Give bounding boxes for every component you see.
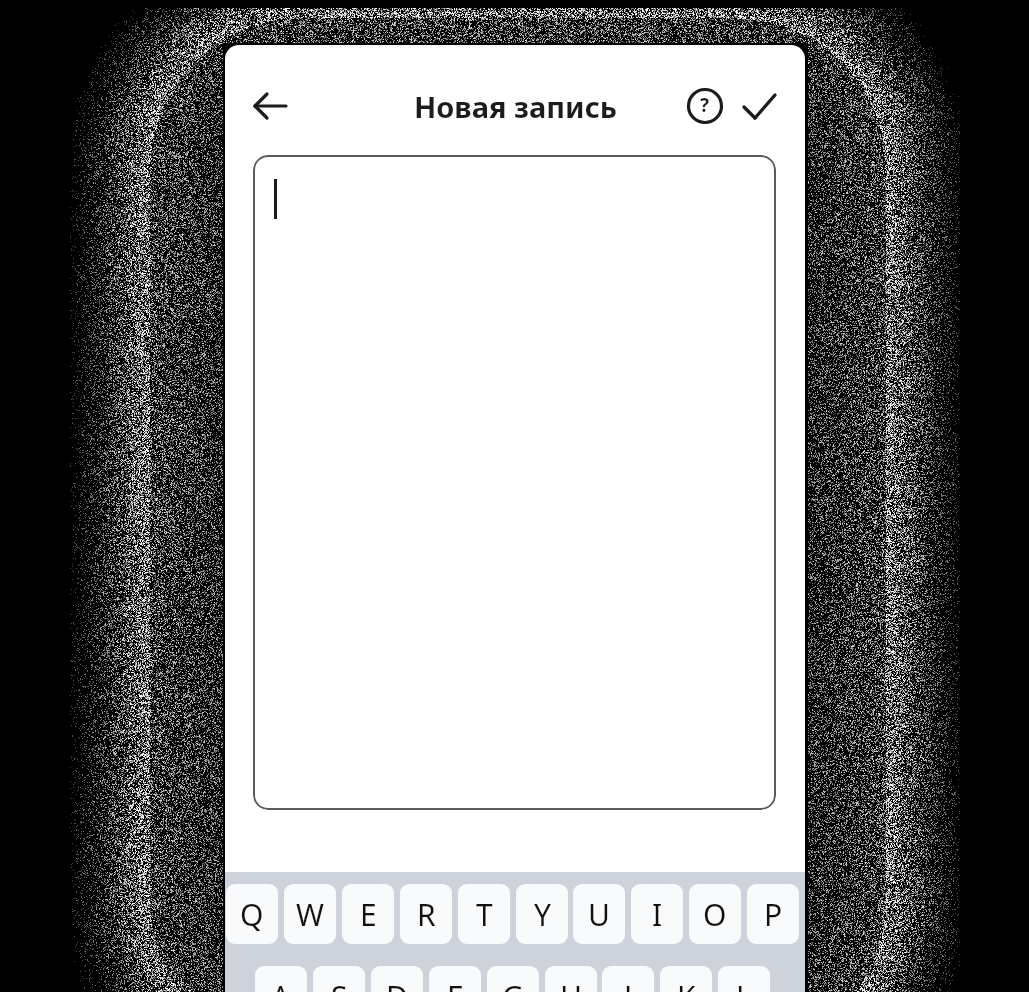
- button[interactable]: D: [371, 966, 423, 992]
- staticText: Y: [534, 894, 551, 935]
- button[interactable]: P: [747, 884, 799, 944]
- staticText: L: [736, 976, 752, 992]
- button[interactable]: G: [487, 966, 539, 992]
- staticText: E: [360, 894, 377, 935]
- button[interactable]: E: [342, 884, 394, 944]
- staticText: Новая запись: [414, 87, 617, 125]
- button[interactable]: Back: [248, 84, 292, 128]
- staticText: P: [764, 894, 783, 935]
- staticText: R: [417, 894, 436, 935]
- staticText: K: [677, 976, 696, 992]
- staticText: ?: [700, 92, 710, 118]
- staticText: D: [386, 976, 408, 992]
- button[interactable]: Y: [516, 884, 568, 944]
- staticText: I: [652, 894, 663, 935]
- staticText: S: [331, 976, 348, 992]
- button[interactable]: R: [400, 884, 452, 944]
- staticText: J: [624, 976, 633, 992]
- staticText: W: [296, 894, 324, 935]
- staticText: F: [447, 976, 463, 992]
- staticText: Q: [240, 894, 264, 935]
- staticText: A: [271, 976, 291, 992]
- button[interactable]: K: [660, 966, 712, 992]
- button[interactable]: I: [631, 884, 683, 944]
- button[interactable]: Help: [681, 82, 729, 130]
- button[interactable]: O: [689, 884, 741, 944]
- button[interactable]: W: [284, 884, 336, 944]
- button[interactable]: H: [545, 966, 597, 992]
- button[interactable]: A: [255, 966, 307, 992]
- button[interactable]: Save: [735, 82, 783, 130]
- button[interactable]: T: [458, 884, 510, 944]
- button[interactable]: [253, 155, 776, 810]
- staticText: O: [703, 894, 727, 935]
- staticText: H: [560, 976, 583, 992]
- staticText: T: [476, 894, 493, 935]
- button[interactable]: J: [602, 966, 654, 992]
- button[interactable]: S: [313, 966, 365, 992]
- button[interactable]: U: [573, 884, 625, 944]
- staticText: G: [502, 976, 524, 992]
- staticText: U: [588, 894, 610, 935]
- button[interactable]: Q: [226, 884, 278, 944]
- button[interactable]: F: [429, 966, 481, 992]
- button[interactable]: L: [718, 966, 770, 992]
